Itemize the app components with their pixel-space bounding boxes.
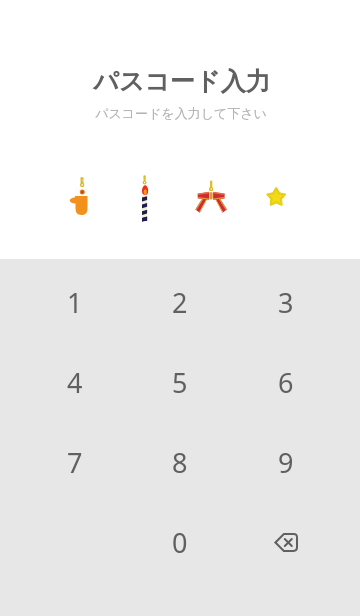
staticText: 8: [172, 444, 188, 481]
button[interactable]: 5: [127, 342, 233, 422]
button[interactable]: 4: [22, 342, 127, 422]
button[interactable]: 7: [22, 422, 127, 502]
staticText: 5: [172, 364, 188, 401]
button[interactable]: 9: [233, 422, 339, 502]
button[interactable]: Delete: [233, 502, 339, 582]
staticText: 1: [67, 284, 83, 321]
button[interactable]: 1: [22, 262, 127, 342]
staticText: パスコード入力: [93, 66, 271, 97]
staticText: 0: [172, 524, 188, 561]
button[interactable]: 2: [127, 262, 233, 342]
button[interactable]: 0: [127, 502, 233, 582]
staticText: 4: [67, 364, 83, 401]
button[interactable]: 8: [127, 422, 233, 502]
staticText: 6: [278, 364, 294, 401]
staticText: 2: [172, 284, 188, 321]
staticText: 3: [278, 284, 294, 321]
staticText: 9: [278, 444, 294, 481]
staticText: 7: [67, 444, 83, 481]
button[interactable]: 6: [233, 342, 339, 422]
button[interactable]: 3: [233, 262, 339, 342]
staticText: パスコードを入力して下さい: [95, 105, 267, 121]
